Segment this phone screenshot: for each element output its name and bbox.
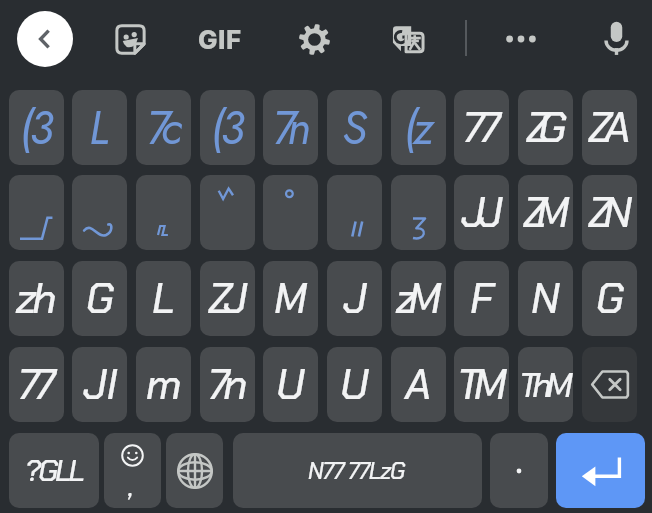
staticText: L	[152, 271, 175, 326]
button[interactable]: ZA	[582, 90, 637, 165]
button[interactable]: U	[263, 347, 318, 422]
staticText: ,	[128, 471, 134, 503]
button[interactable]: 7c	[136, 90, 191, 165]
staticText: Jl	[83, 357, 117, 412]
button[interactable]: S	[327, 90, 382, 165]
staticText: JJ	[461, 185, 497, 240]
button[interactable]	[490, 433, 548, 508]
button[interactable]: TM	[454, 347, 509, 422]
button[interactable]: N	[518, 261, 573, 336]
staticText: F	[470, 271, 494, 326]
staticText: U	[340, 357, 369, 412]
staticText: 7n	[272, 95, 306, 161]
button[interactable]: zM	[391, 261, 446, 336]
staticText: 7n	[208, 357, 242, 412]
button[interactable]: Enter	[556, 433, 645, 508]
staticText: ZM	[523, 185, 559, 240]
button[interactable]: ZJ	[200, 261, 255, 336]
staticText: ThM	[519, 363, 567, 407]
staticText: ZN	[588, 185, 623, 240]
button[interactable]: N77 77LzG	[233, 433, 482, 508]
staticText: (3	[210, 95, 241, 161]
button[interactable]: ZN	[582, 175, 637, 250]
staticText: zM	[396, 271, 434, 326]
button[interactable]: 77	[454, 90, 509, 165]
staticText: M	[274, 271, 307, 326]
button[interactable]: More options	[501, 19, 541, 59]
staticText: TM	[457, 357, 500, 412]
button[interactable]: G	[72, 261, 127, 336]
button[interactable]: F	[454, 261, 509, 336]
button[interactable]: zh	[9, 261, 64, 336]
staticText: ZJ	[208, 271, 240, 326]
staticText: ?GLL	[25, 451, 82, 490]
staticText: L	[89, 95, 110, 161]
button[interactable]: M	[263, 261, 318, 336]
button[interactable]: Stickers	[110, 19, 150, 59]
button[interactable]: J	[327, 261, 382, 336]
button[interactable]: Backspace	[582, 347, 637, 422]
staticText: U	[276, 357, 305, 412]
button[interactable]	[391, 175, 446, 250]
button[interactable]: ZG	[518, 90, 573, 165]
button[interactable]: Voice input	[596, 18, 636, 58]
button[interactable]: (3	[200, 90, 255, 165]
staticText: GIF	[198, 24, 242, 55]
staticText: A	[405, 357, 432, 412]
button[interactable]: m	[136, 347, 191, 422]
staticText: (z	[403, 95, 430, 161]
button[interactable]: Back	[17, 11, 73, 67]
button[interactable]: A	[391, 347, 446, 422]
button[interactable]: ?GLL	[9, 433, 99, 508]
button[interactable]: Translate	[388, 19, 428, 59]
staticText: N	[531, 271, 560, 326]
staticText: N77 77LzG	[308, 456, 405, 486]
staticText: J	[343, 271, 367, 326]
button[interactable]	[200, 175, 255, 250]
button[interactable]: 7n	[263, 90, 318, 165]
button[interactable]	[136, 175, 191, 250]
staticText: m	[146, 357, 182, 412]
button[interactable]: U	[327, 347, 382, 422]
staticText: G	[86, 271, 114, 326]
staticText: S	[342, 95, 367, 161]
staticText: 7c	[146, 95, 178, 161]
button[interactable]: L	[136, 261, 191, 336]
staticText: zh	[16, 271, 53, 326]
button[interactable]: JJ	[454, 175, 509, 250]
button[interactable]	[327, 175, 382, 250]
button[interactable]: GIF	[194, 19, 246, 59]
button[interactable]: L	[72, 90, 127, 165]
staticText: ZA	[588, 100, 623, 155]
button[interactable]: Jl	[72, 347, 127, 422]
button[interactable]: ZM	[518, 175, 573, 250]
button[interactable]: ThM	[518, 347, 573, 422]
button[interactable]	[72, 175, 127, 250]
button[interactable]: (z	[391, 90, 446, 165]
staticText: G	[596, 271, 624, 326]
other: Backspace	[591, 370, 629, 399]
button[interactable]	[263, 175, 318, 250]
button[interactable]: G	[582, 261, 637, 336]
button[interactable]: Settings	[294, 19, 334, 59]
staticText: (3	[19, 95, 50, 161]
button[interactable]: Change language	[166, 433, 223, 508]
staticText: ZG	[526, 100, 556, 155]
button[interactable]: 77	[9, 347, 64, 422]
staticText: 77	[18, 357, 51, 412]
button[interactable]: 7n	[200, 347, 255, 422]
button[interactable]: ,	[104, 433, 161, 508]
button[interactable]: (3	[9, 90, 64, 165]
button[interactable]	[9, 175, 64, 250]
staticText: 77	[463, 100, 496, 155]
